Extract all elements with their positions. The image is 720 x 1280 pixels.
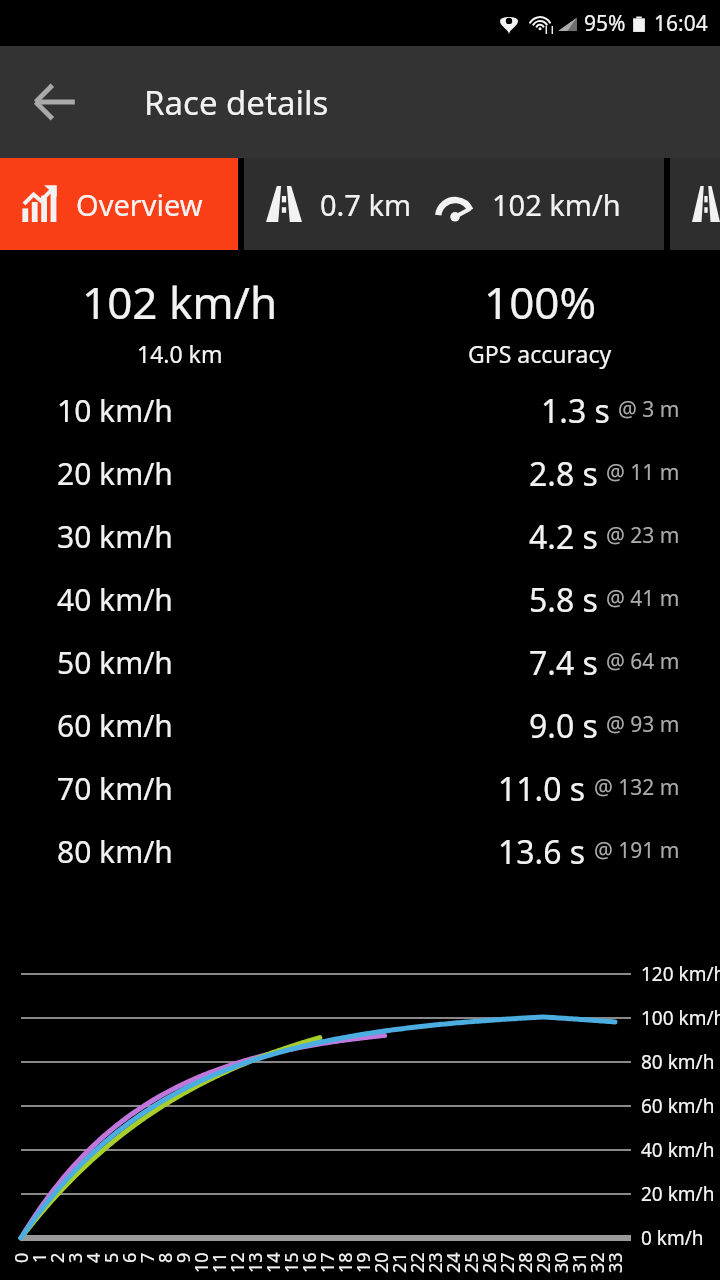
button[interactable]: 50 km/h [0, 631, 720, 694]
button[interactable]: Back [18, 65, 92, 139]
button[interactable]: 60 km/h [0, 694, 720, 757]
button[interactable]: 0.7 km [244, 158, 664, 250]
staticText: 7.4 s [529, 641, 598, 685]
staticText: 5.8 s [529, 578, 598, 622]
staticText: 11.0 s [498, 767, 586, 811]
button[interactable]: 80 km/h [0, 820, 720, 883]
staticText: 95% [584, 9, 626, 38]
button[interactable]: 10 km/h [0, 379, 720, 442]
staticText: @ 132 m [594, 773, 680, 802]
staticText: 30 km/h [57, 516, 173, 557]
staticText: Overview [76, 185, 203, 224]
button[interactable]: 20 km/h [0, 442, 720, 505]
staticText: 20 km/h [57, 453, 173, 494]
staticText: @ 64 m [606, 647, 680, 676]
button[interactable]: 70 km/h [0, 757, 720, 820]
staticText: GPS accuracy [468, 338, 612, 369]
staticText: 102 km/h [82, 272, 278, 332]
staticText: 2.8 s [529, 452, 598, 496]
staticText: Race details [144, 80, 329, 125]
staticText: 9.0 s [529, 704, 598, 748]
staticText: 60 km/h [57, 705, 173, 746]
staticText: @ 3 m [618, 395, 680, 424]
staticText: 70 km/h [57, 768, 173, 809]
staticText: @ 23 m [606, 521, 680, 550]
staticText: 16:04 [654, 9, 708, 38]
staticText: 80 km/h [57, 831, 173, 872]
staticText: @ 93 m [606, 710, 680, 739]
staticText: 1.3 s [541, 389, 610, 433]
staticText: 14.0 km [137, 338, 223, 369]
button[interactable]: Overview [0, 158, 238, 250]
staticText: @ 191 m [594, 836, 680, 865]
staticText: @ 11 m [606, 458, 680, 487]
staticText: 13.6 s [498, 830, 586, 874]
staticText: 102 km/h [492, 185, 621, 224]
staticText: 0.7 km [320, 185, 412, 224]
staticText: 10 km/h [57, 390, 173, 431]
staticText: 4.2 s [529, 515, 598, 559]
button[interactable]: 40 km/h [0, 568, 720, 631]
staticText: 50 km/h [57, 642, 173, 683]
staticText: 40 km/h [57, 579, 173, 620]
button[interactable]: More [670, 158, 720, 250]
staticText: @ 41 m [606, 584, 680, 613]
button[interactable]: 30 km/h [0, 505, 720, 568]
staticText: 100% [484, 272, 597, 332]
